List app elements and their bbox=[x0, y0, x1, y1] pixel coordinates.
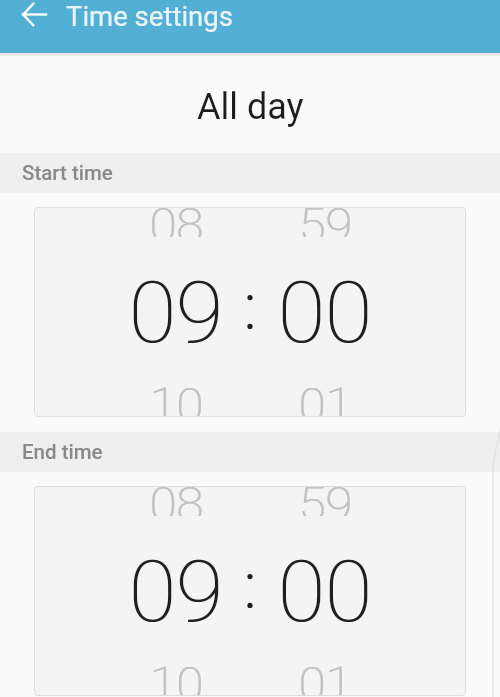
staticText: 09 bbox=[128, 541, 223, 642]
staticText: 00 bbox=[277, 541, 372, 642]
staticText: 01 bbox=[298, 656, 352, 696]
staticText: 09 bbox=[129, 262, 224, 363]
staticText: 09 bbox=[128, 262, 223, 363]
staticText: 08 bbox=[150, 486, 204, 516]
staticText: 00 bbox=[278, 541, 373, 642]
staticText: 10 bbox=[149, 377, 203, 417]
staticText: 01 bbox=[298, 377, 352, 417]
staticText: 09 bbox=[129, 541, 224, 642]
button[interactable]: 08 bbox=[34, 486, 466, 696]
staticText: 10 bbox=[149, 656, 203, 696]
staticText: 59 bbox=[299, 486, 353, 516]
staticText: End time bbox=[22, 440, 103, 464]
staticText: 59 bbox=[299, 207, 353, 237]
staticText: 10 bbox=[150, 377, 204, 417]
staticText: 00 bbox=[278, 262, 373, 363]
staticText: 00 bbox=[277, 262, 372, 363]
staticText: Start time bbox=[22, 161, 113, 185]
staticText: All day bbox=[197, 86, 304, 128]
button[interactable]: Back bbox=[12, 0, 55, 36]
staticText: 08 bbox=[149, 486, 203, 516]
staticText: 01 bbox=[299, 656, 353, 696]
staticText: 59 bbox=[298, 486, 352, 516]
staticText: 59 bbox=[298, 207, 352, 237]
staticText: 01 bbox=[299, 377, 353, 417]
staticText: 10 bbox=[150, 656, 204, 696]
staticText: 08 bbox=[149, 207, 203, 237]
staticText: Time settings bbox=[66, 0, 233, 32]
staticText: 08 bbox=[150, 207, 204, 237]
button[interactable]: 08 bbox=[34, 207, 466, 417]
